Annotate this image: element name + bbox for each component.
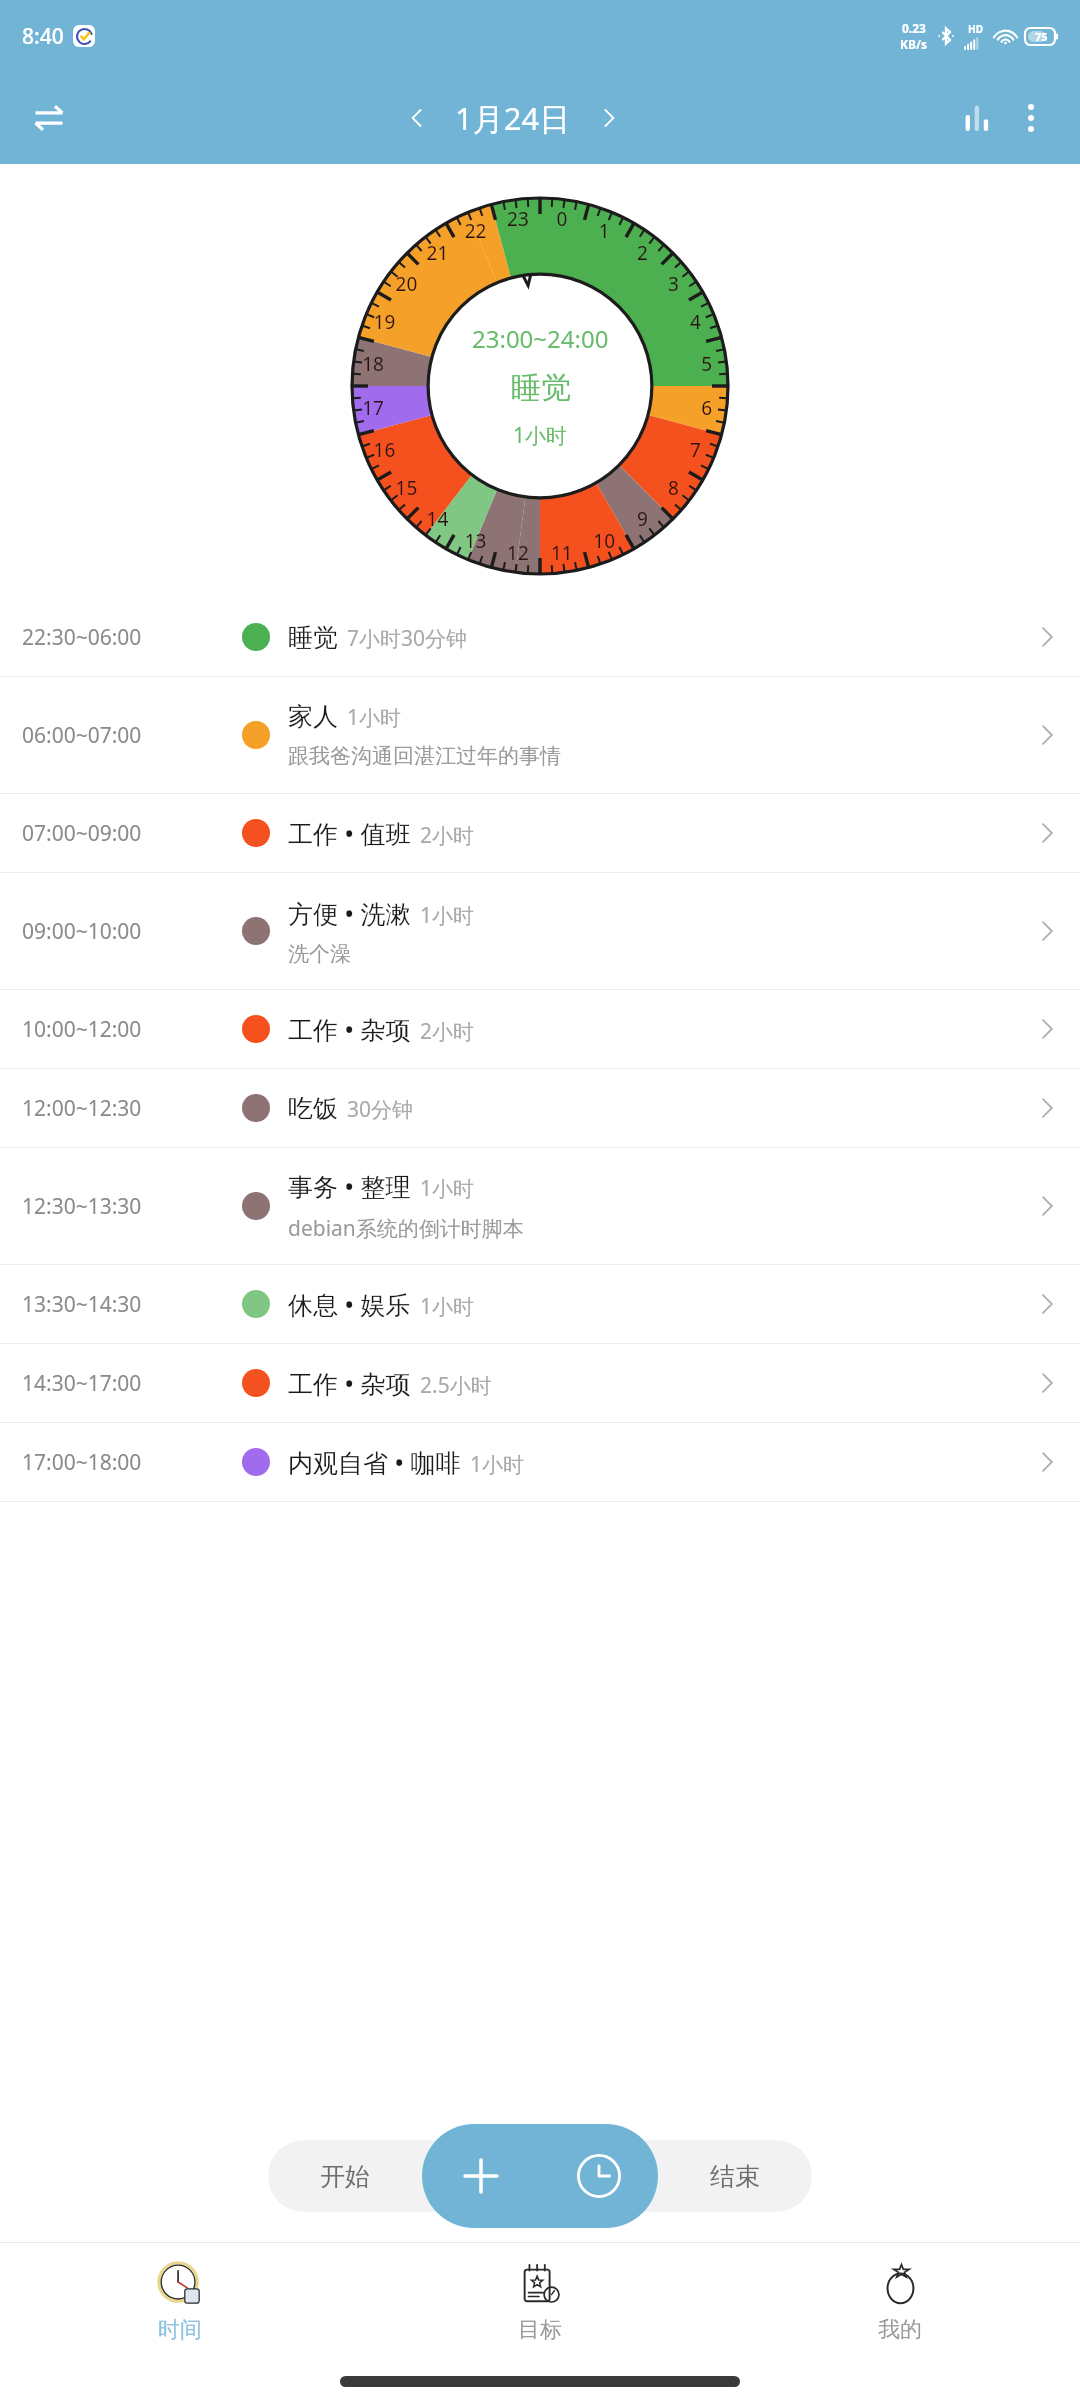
button[interactable]: 13:30~14:30	[0, 1265, 1080, 1344]
staticText: 14:30~17:00	[22, 1369, 142, 1398]
button[interactable]: More options	[1004, 91, 1058, 145]
staticText: 2小时	[420, 1017, 475, 1046]
button[interactable]: 06:00~07:00	[0, 677, 1080, 794]
staticText: 事务 • 整理	[288, 1169, 411, 1203]
staticText: 吃饭	[288, 1093, 338, 1124]
button[interactable]: 07:00~09:00	[0, 794, 1080, 873]
button[interactable]: 09:00~10:00	[0, 873, 1080, 990]
staticText: 09:00~10:00	[22, 917, 142, 946]
staticText: 工作 • 杂项	[288, 1012, 411, 1046]
staticText: 我的	[878, 2316, 922, 2344]
staticText: HD	[968, 22, 983, 36]
button[interactable]: 开始	[268, 2140, 422, 2212]
button[interactable]: 目标	[360, 2243, 720, 2361]
staticText: 1小时	[420, 1292, 475, 1321]
staticText: debian系统的倒计时脚本	[288, 1214, 524, 1243]
staticText: 时间	[158, 2316, 202, 2344]
button[interactable]: 结束	[658, 2140, 812, 2212]
button[interactable]: 12:30~13:30	[0, 1148, 1080, 1265]
button[interactable]: Timer	[540, 2124, 658, 2228]
staticText: 30分钟	[347, 1095, 414, 1124]
staticText: 10:00~12:00	[22, 1015, 142, 1044]
button[interactable]: Add record	[422, 2124, 540, 2228]
staticText: 7小时30分钟	[347, 624, 468, 653]
button[interactable]: Switch view	[22, 91, 76, 145]
staticText: 睡觉	[511, 369, 571, 407]
button[interactable]: 1月24日	[449, 97, 577, 139]
staticText: 休息 • 娱乐	[288, 1287, 411, 1321]
staticText: 洗个澡	[288, 941, 351, 967]
staticText: 23:00~24:00	[472, 322, 609, 355]
staticText: 0.23	[902, 20, 926, 36]
staticText: 1月24日	[455, 97, 571, 139]
staticText: 工作 • 值班	[288, 816, 411, 850]
staticText: 75	[1035, 29, 1048, 44]
staticText: 睡觉	[288, 622, 338, 653]
staticText: 17:00~18:00	[22, 1448, 142, 1477]
staticText: 2.5小时	[420, 1371, 492, 1400]
button[interactable]: Next day	[583, 92, 635, 144]
staticText: 8:40	[22, 22, 64, 51]
staticText: 2小时	[420, 821, 475, 850]
staticText: 1小时	[420, 1174, 475, 1203]
button[interactable]: 22:30~06:00	[0, 598, 1080, 677]
button[interactable]: 10:00~12:00	[0, 990, 1080, 1069]
staticText: 1小时	[513, 421, 568, 450]
staticText: 12:30~13:30	[22, 1192, 142, 1221]
button[interactable]: 我的	[720, 2243, 1080, 2361]
button[interactable]: 17:00~18:00	[0, 1423, 1080, 1502]
staticText: 06:00~07:00	[22, 721, 142, 750]
staticText: 目标	[518, 2316, 562, 2344]
button[interactable]: Statistics	[950, 91, 1004, 145]
staticText: 1小时	[420, 901, 475, 930]
staticText: 开始	[320, 2161, 370, 2192]
staticText: 跟我爸沟通回湛江过年的事情	[288, 743, 561, 769]
button[interactable]: 14:30~17:00	[0, 1344, 1080, 1423]
button[interactable]: 时间	[0, 2243, 360, 2361]
button[interactable]: 12:00~12:30	[0, 1069, 1080, 1148]
staticText: 结束	[710, 2161, 760, 2192]
staticText: 家人	[288, 701, 338, 732]
staticText: 方便 • 洗漱	[288, 896, 411, 930]
button[interactable]: Previous day	[391, 92, 443, 144]
staticText: 07:00~09:00	[22, 819, 142, 848]
staticText: 12:00~12:30	[22, 1094, 142, 1123]
staticText: 1小时	[347, 703, 402, 732]
staticText: 内观自省 • 咖啡	[288, 1445, 461, 1479]
staticText: 1小时	[470, 1450, 525, 1479]
staticText: 13:30~14:30	[22, 1290, 142, 1319]
staticText: 工作 • 杂项	[288, 1366, 411, 1400]
staticText: KB/s	[900, 36, 927, 52]
staticText: 22:30~06:00	[22, 623, 142, 652]
